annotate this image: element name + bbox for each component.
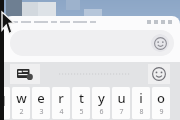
button[interactable]: Stickers xyxy=(10,64,40,84)
staticText: 9 xyxy=(159,107,164,117)
staticText: 5 xyxy=(79,107,84,117)
staticText: e xyxy=(37,89,45,107)
staticText: u xyxy=(117,89,126,107)
staticText: q xyxy=(0,89,6,107)
button[interactable]: y xyxy=(92,87,110,119)
staticText: r xyxy=(58,89,64,107)
button[interactable]: Emoji xyxy=(151,34,169,52)
staticText: 8 xyxy=(139,107,144,117)
staticText: 6 xyxy=(99,107,104,117)
staticText: o xyxy=(157,89,165,107)
staticText: i xyxy=(139,89,143,107)
button[interactable]: w xyxy=(12,87,30,119)
staticText: t xyxy=(79,89,84,107)
button[interactable]: i xyxy=(132,87,150,119)
button[interactable]: r xyxy=(52,87,70,119)
button[interactable]: Emoji xyxy=(10,30,174,56)
staticText: 3 xyxy=(39,107,44,117)
button[interactable]: o xyxy=(152,87,170,119)
button[interactable]: q xyxy=(0,87,10,119)
button[interactable]: Emoji keyboard xyxy=(148,64,170,84)
button[interactable]: u xyxy=(112,87,130,119)
staticText: 2 xyxy=(19,107,24,117)
staticText: y xyxy=(98,89,105,107)
staticText: 4 xyxy=(59,107,64,117)
staticText: w xyxy=(16,89,27,107)
button[interactable]: t xyxy=(72,87,90,119)
button[interactable]: e xyxy=(32,87,50,119)
staticText: 7 xyxy=(119,107,124,117)
